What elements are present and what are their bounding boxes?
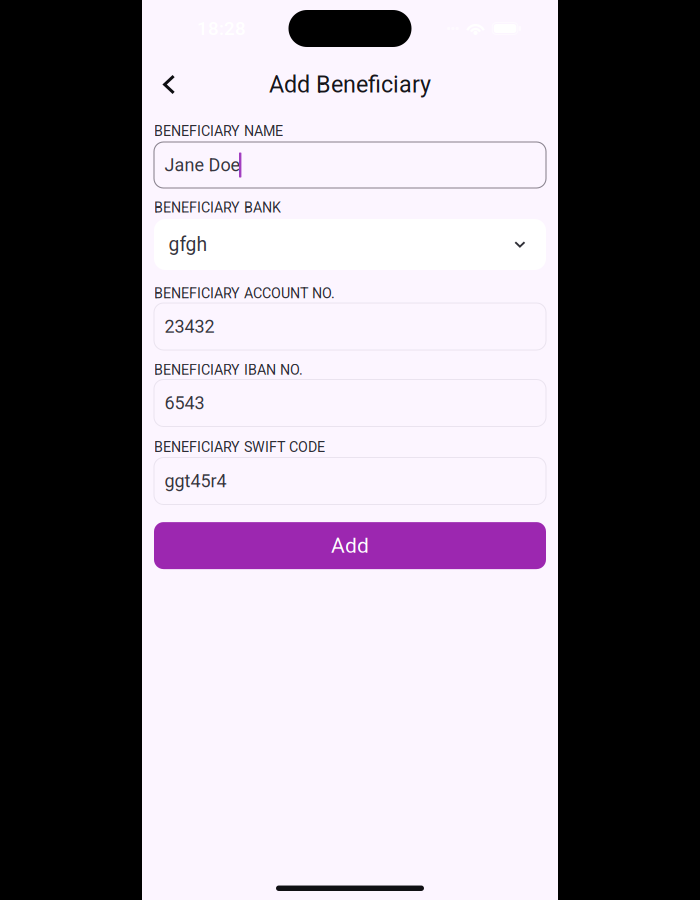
- button[interactable]: Back: [142, 61, 191, 102]
- staticText: BENEFICIARY IBAN NO.: [154, 361, 303, 378]
- staticText: Jane Doe: [164, 154, 240, 176]
- button[interactable]: Jane Doe: [154, 142, 546, 188]
- button[interactable]: 6543: [154, 379, 546, 426]
- staticText: gfgh: [168, 233, 207, 256]
- button[interactable]: Add: [154, 522, 546, 569]
- staticText: Add: [331, 533, 369, 558]
- staticText: Add Beneficiary: [269, 71, 431, 98]
- staticText: BENEFICIARY ACCOUNT NO.: [154, 285, 335, 302]
- button[interactable]: ggt45r4: [154, 457, 546, 504]
- staticText: BENEFICIARY BANK: [154, 199, 281, 216]
- button[interactable]: gfgh: [154, 219, 546, 270]
- button[interactable]: 23432: [154, 303, 546, 350]
- staticText: BENEFICIARY SWIFT CODE: [154, 439, 325, 455]
- staticText: 18:28: [197, 18, 246, 39]
- staticText: BENEFICIARY NAME: [154, 123, 283, 139]
- staticText: ggt45r4: [164, 470, 226, 492]
- staticText: 23432: [164, 316, 214, 337]
- staticText: 6543: [164, 392, 204, 414]
